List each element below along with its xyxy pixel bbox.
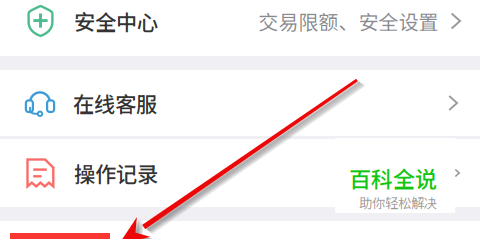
button[interactable]: 在线客服 bbox=[0, 70, 480, 136]
staticText: 交易限额、安全设置 bbox=[259, 6, 439, 35]
staticText: 百科全说 bbox=[349, 162, 437, 194]
staticText: 助你轻松解决 bbox=[359, 193, 437, 212]
button[interactable]: 百科全说 bbox=[335, 138, 455, 213]
button[interactable]: 操作记录 bbox=[0, 139, 480, 207]
staticText: 在线客服 bbox=[73, 88, 157, 118]
staticText: 安全中心 bbox=[74, 6, 158, 36]
button[interactable]: 安全中心 bbox=[0, 0, 480, 56]
staticText: 操作记录 bbox=[74, 158, 158, 188]
